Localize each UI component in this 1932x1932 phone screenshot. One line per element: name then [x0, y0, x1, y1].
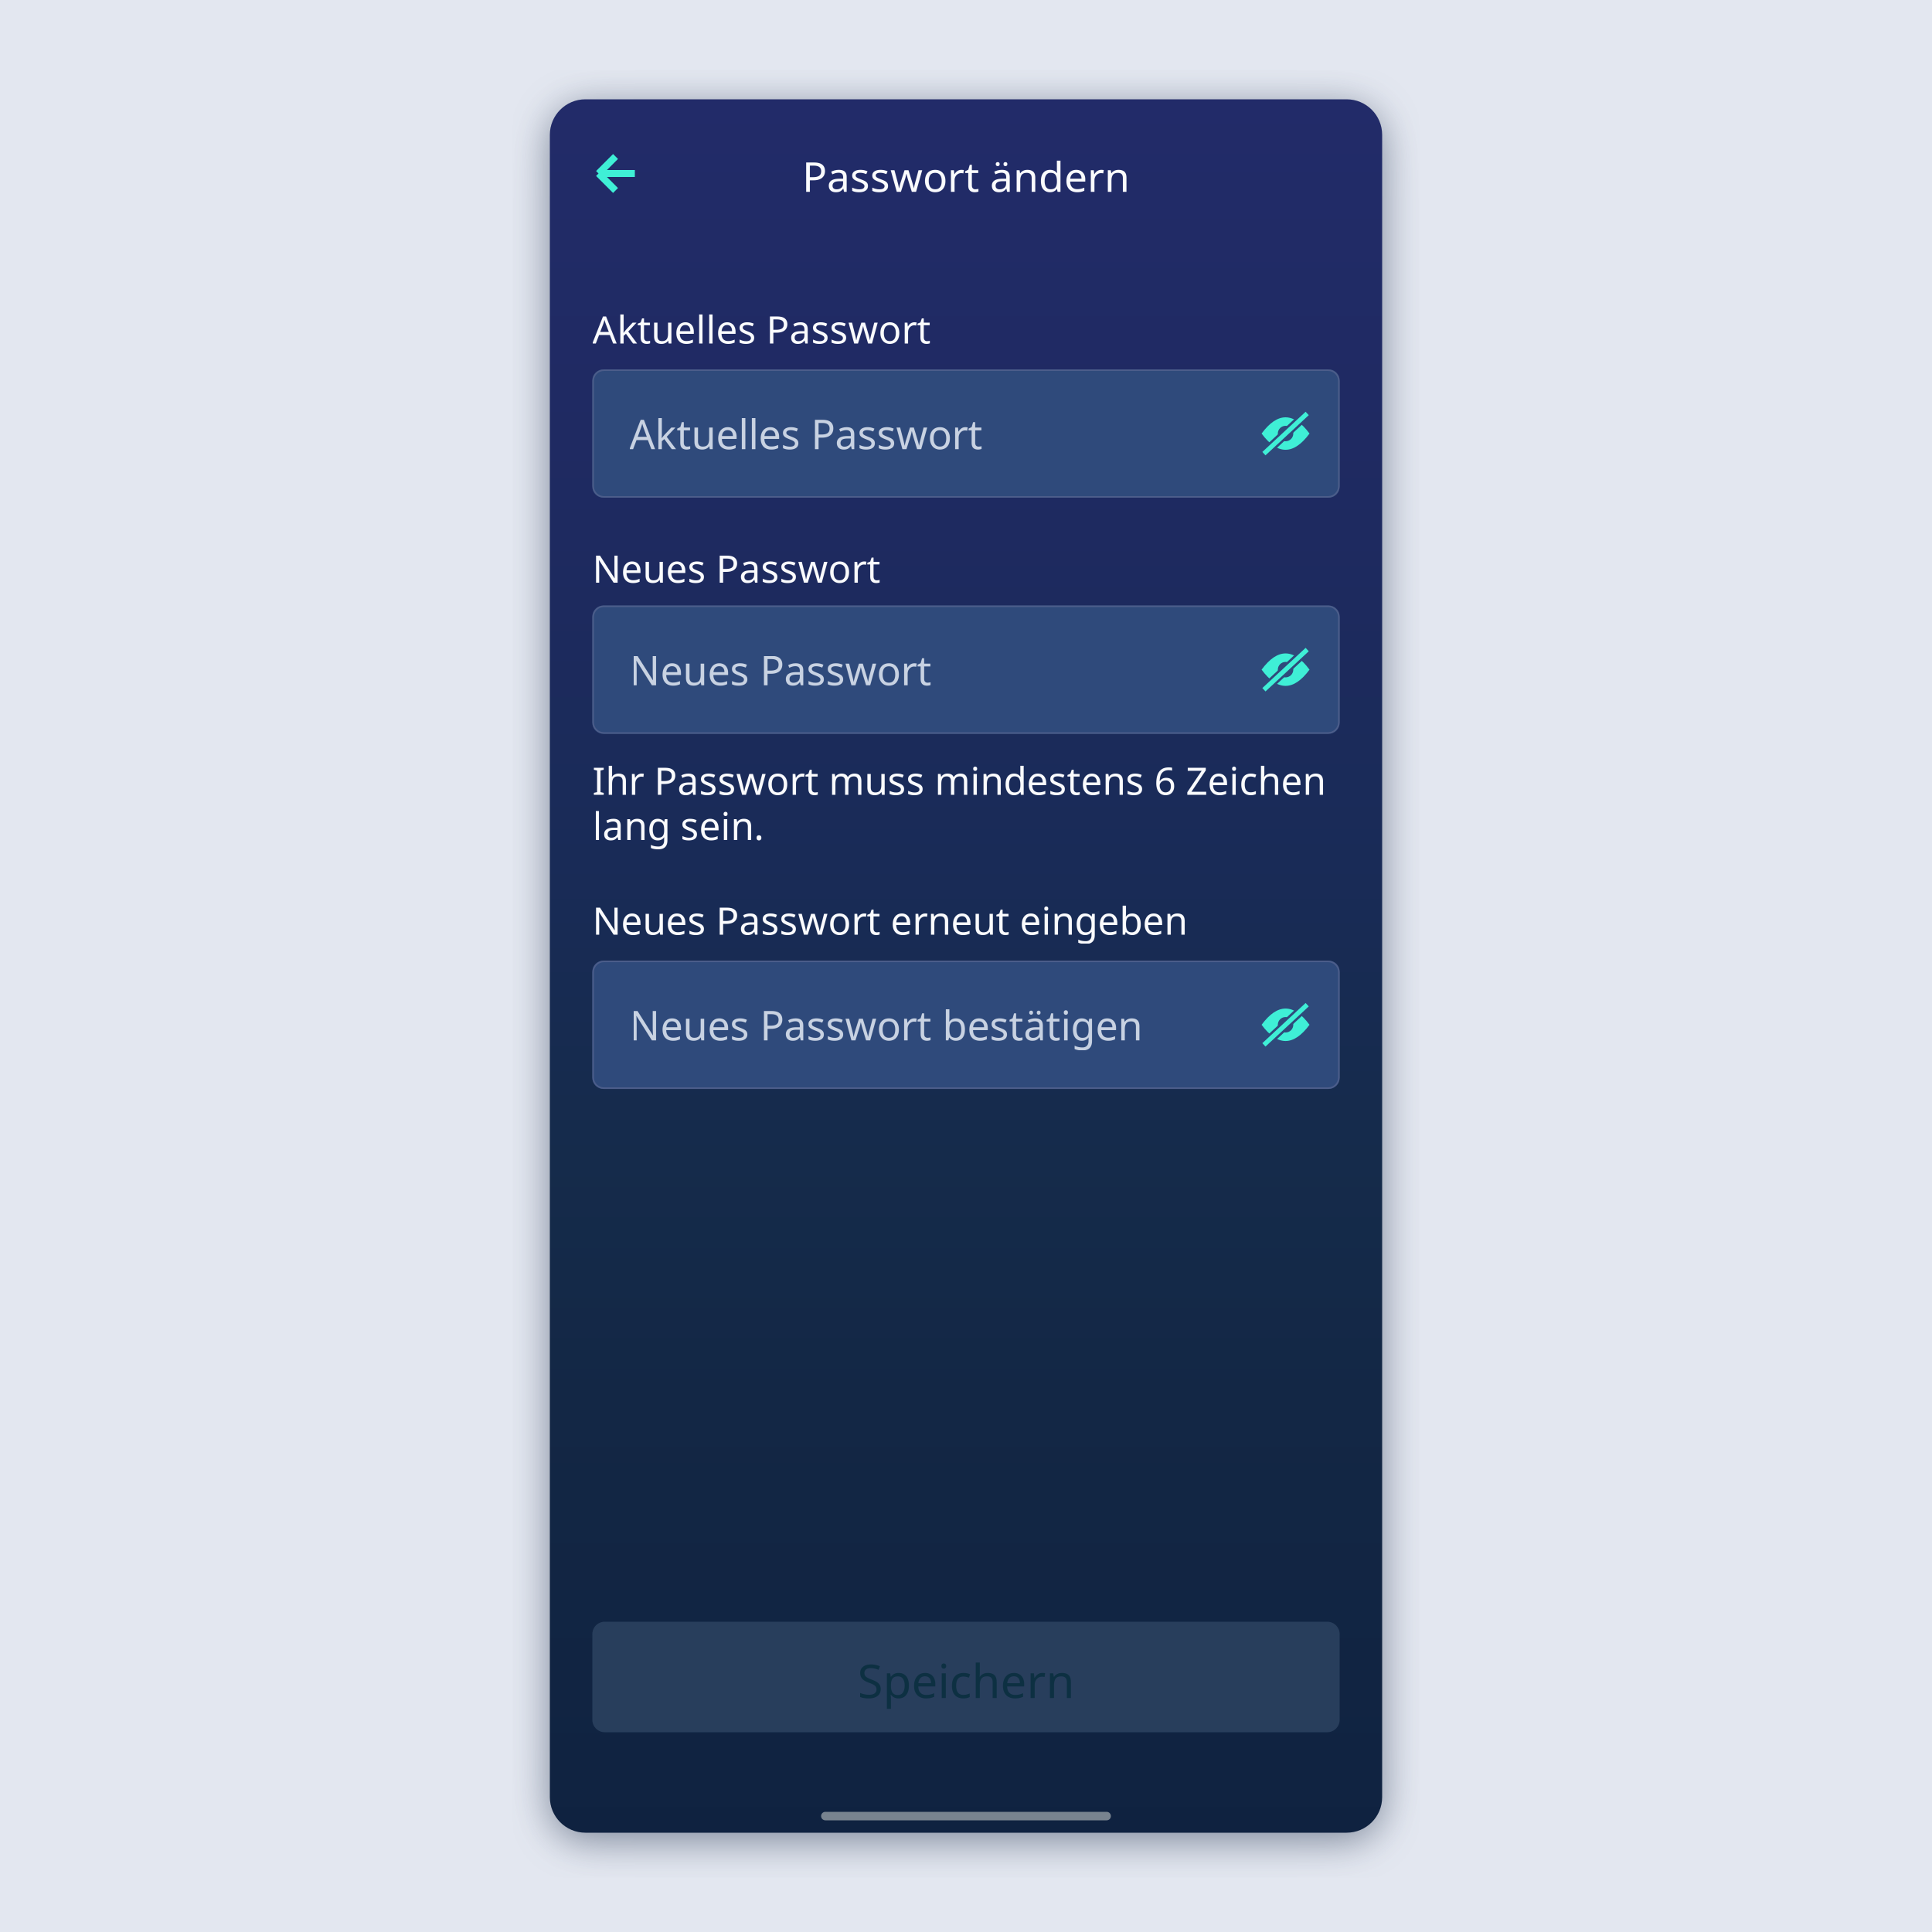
staticText: Neues Passwort erneut eingeben [592, 895, 1187, 945]
staticText: Speichern [857, 1649, 1075, 1711]
button[interactable]: Neues Passwort [592, 605, 1340, 734]
staticText: Passwort ändern [802, 148, 1130, 203]
staticText: Neues Passwort [592, 543, 881, 593]
button[interactable]: Aktuelles Passwort [592, 369, 1340, 498]
staticText: Aktuelles Passwort [592, 303, 931, 354]
staticText: Ihr Passwort muss mindestens 6 Zeichen [592, 755, 1326, 805]
staticText: Aktuelles Passwort [629, 407, 983, 460]
button[interactable]: Speichern [592, 1622, 1340, 1732]
button[interactable]: Neues Passwort bestätigen [592, 961, 1340, 1089]
staticText: lang sein. [592, 800, 764, 850]
staticText: Neues Passwort bestätigen [629, 998, 1143, 1051]
button[interactable]: Show password [1261, 412, 1310, 455]
button[interactable]: Show password [1261, 648, 1310, 691]
button[interactable]: Back [550, 147, 636, 204]
staticText: Neues Passwort [629, 643, 932, 696]
button[interactable]: Show password [1261, 1003, 1310, 1046]
